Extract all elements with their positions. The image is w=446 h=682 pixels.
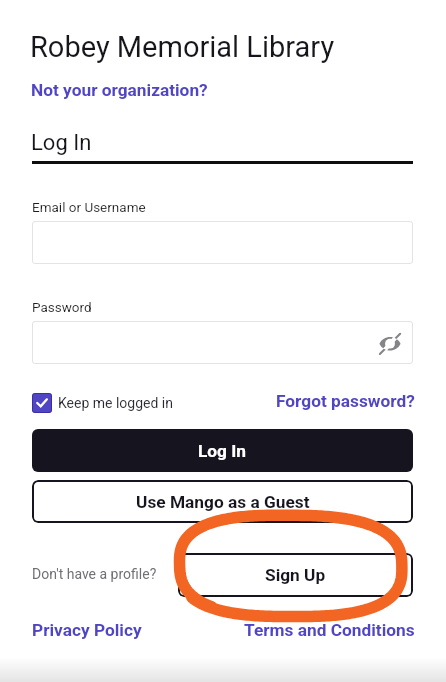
staticText: Log In: [31, 130, 92, 156]
button[interactable]: Terms and Conditions: [244, 620, 415, 640]
staticText: Sign Up: [265, 565, 326, 585]
button[interactable]: Keep me logged in: [32, 393, 174, 413]
button[interactable]: Log In: [32, 429, 413, 472]
button[interactable]: Forgot password?: [276, 391, 415, 411]
staticText: Keep me logged in: [58, 395, 174, 411]
button[interactable]: Show password: [32, 321, 413, 364]
button[interactable]: Sign Up: [178, 553, 413, 597]
staticText: Robey Memorial Library: [30, 30, 335, 64]
button[interactable]: Privacy Policy: [32, 620, 142, 640]
staticText: Email or Username: [32, 199, 146, 215]
staticText: Not your organization?: [31, 80, 208, 100]
staticText: Terms and Conditions: [244, 620, 415, 640]
staticText: Log In: [198, 441, 247, 461]
button[interactable]: Use Mango as a Guest: [32, 480, 413, 523]
button[interactable]: [32, 221, 413, 264]
button[interactable]: Not your organization?: [31, 80, 208, 100]
button[interactable]: Show password: [375, 328, 405, 358]
staticText: Don't have a profile?: [32, 566, 157, 582]
staticText: Forgot password?: [276, 391, 415, 411]
staticText: Use Mango as a Guest: [136, 492, 310, 512]
staticText: Password: [32, 299, 92, 315]
staticText: Privacy Policy: [32, 620, 142, 640]
